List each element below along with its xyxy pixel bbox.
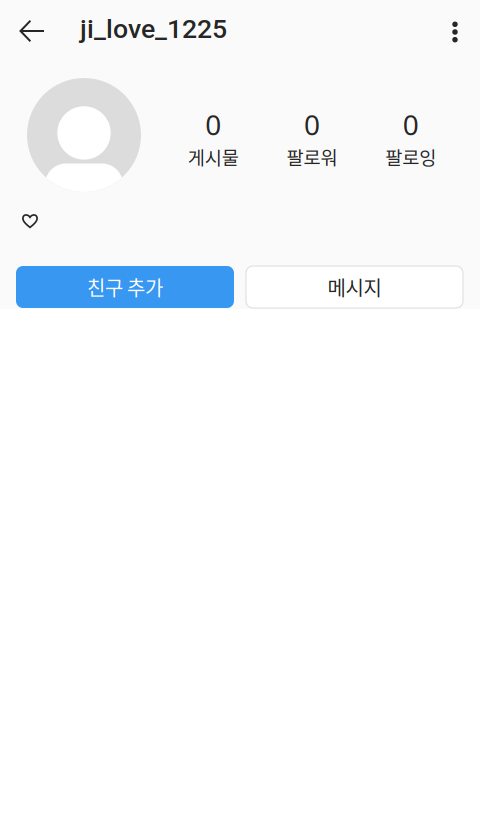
staticText: 0	[205, 106, 221, 143]
staticText: 게시물	[188, 143, 239, 170]
button[interactable]: 메시지	[246, 266, 463, 308]
button[interactable]: 친구 추가	[16, 266, 234, 308]
staticText: 친구 추가	[87, 272, 163, 301]
staticText: 0	[304, 106, 320, 143]
button[interactable]: Back	[0, 0, 64, 56]
staticText: 팔로잉	[385, 143, 436, 170]
button[interactable]: More options	[430, 0, 480, 56]
staticText: 0	[403, 106, 419, 143]
button[interactable]: Like	[10, 206, 50, 236]
staticText: ji_love_1225	[80, 13, 227, 45]
staticText: 메시지	[327, 272, 381, 301]
staticText: 팔로워	[287, 143, 338, 170]
